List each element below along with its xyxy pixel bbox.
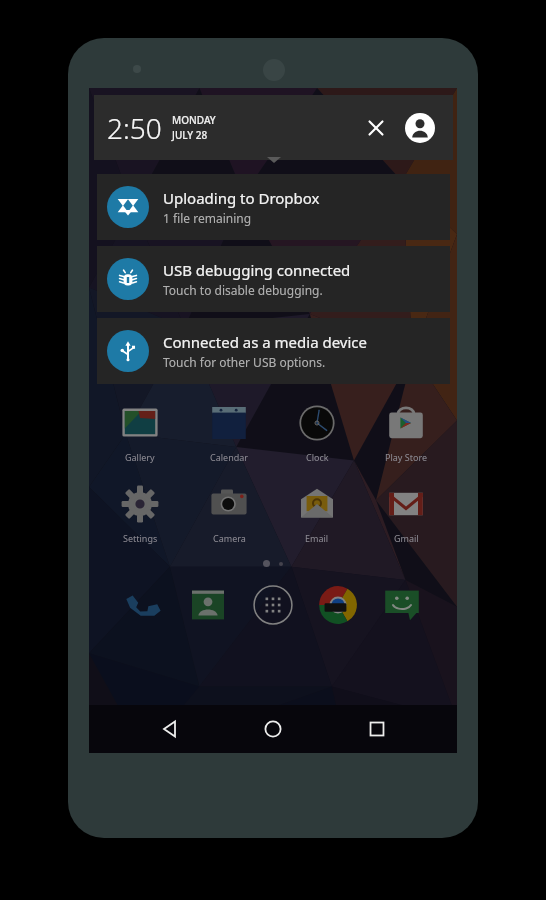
staticText: MONDAY — [172, 113, 216, 127]
staticText: Gmail — [394, 532, 419, 544]
button[interactable]: Gallery — [103, 400, 177, 463]
staticText: Gallery — [125, 451, 155, 463]
staticText: Connected as a media device — [163, 332, 368, 352]
button[interactable]: User profile — [401, 109, 439, 147]
button[interactable]: Chrome — [314, 581, 362, 629]
button[interactable]: Connected as a media device — [97, 318, 450, 384]
button[interactable]: Clock — [280, 400, 354, 463]
button[interactable]: Gmail — [369, 481, 443, 544]
staticText: Calendar — [210, 451, 248, 463]
button[interactable]: Phone — [120, 581, 168, 629]
button[interactable]: Back — [145, 705, 193, 753]
staticText: Uploading to Dropbox — [163, 188, 320, 208]
staticText: 1 file remaining — [163, 210, 252, 226]
button[interactable]: Uploading to Dropbox — [97, 174, 450, 240]
staticText: Email — [305, 532, 329, 544]
staticText: Touch for other USB options. — [163, 354, 326, 370]
button[interactable]: 2:50 — [94, 95, 453, 160]
button[interactable]: Recents — [353, 705, 401, 753]
button[interactable]: Messaging — [378, 581, 426, 629]
button[interactable]: Clear all notifications — [357, 109, 395, 147]
button[interactable]: Apps — [249, 581, 297, 629]
button[interactable]: Home — [249, 705, 297, 753]
button[interactable]: Play Store — [369, 400, 443, 463]
staticText: Touch to disable debugging. — [163, 282, 323, 298]
button[interactable]: Camera — [192, 481, 266, 544]
staticText: Camera — [213, 532, 246, 544]
staticText: JULY 28 — [172, 128, 208, 142]
button[interactable]: Calendar — [192, 400, 266, 463]
staticText: Clock — [306, 451, 329, 463]
button[interactable]: Contacts — [184, 581, 232, 629]
staticText: 2:50 — [107, 109, 162, 147]
staticText: USB debugging connected — [163, 260, 351, 280]
button[interactable]: USB debugging connected — [97, 246, 450, 312]
button[interactable]: Email — [280, 481, 354, 544]
staticText: Play Store — [385, 451, 427, 463]
button[interactable]: Settings — [103, 481, 177, 544]
staticText: Settings — [123, 532, 158, 544]
